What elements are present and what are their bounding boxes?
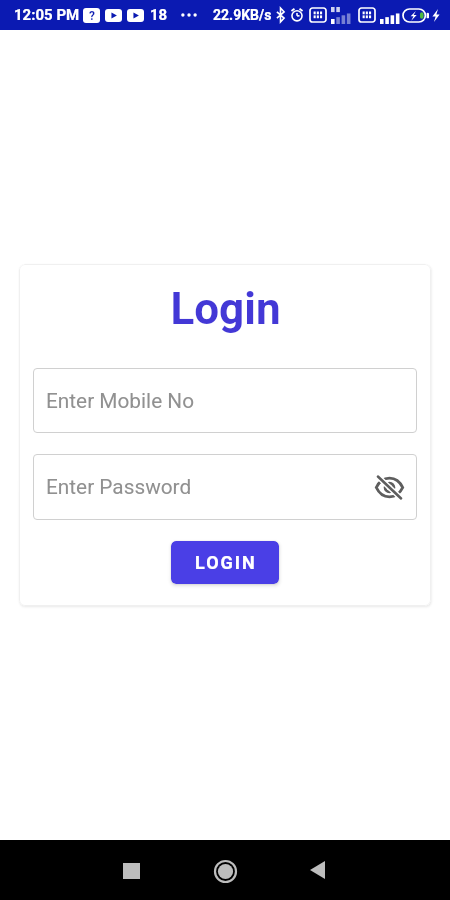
button[interactable]: Home <box>192 840 258 900</box>
button[interactable]: Recents <box>99 840 164 900</box>
button[interactable]: Toggle password visibility <box>373 471 405 503</box>
staticText: 22.9KB/s <box>213 7 272 23</box>
staticText: Enter Mobile No <box>46 389 195 413</box>
staticText: Enter Password <box>46 475 192 499</box>
button[interactable]: Enter Mobile No <box>33 368 417 433</box>
staticText: ? <box>89 9 95 23</box>
button[interactable]: Back <box>285 840 349 900</box>
staticText: 18 <box>150 6 168 24</box>
staticText: 12:05 PM <box>14 6 80 24</box>
staticText: Login <box>170 283 281 335</box>
button[interactable]: Enter Password <box>33 454 417 520</box>
staticText: LOGIN <box>195 552 257 573</box>
button[interactable]: LOGIN <box>171 541 279 584</box>
